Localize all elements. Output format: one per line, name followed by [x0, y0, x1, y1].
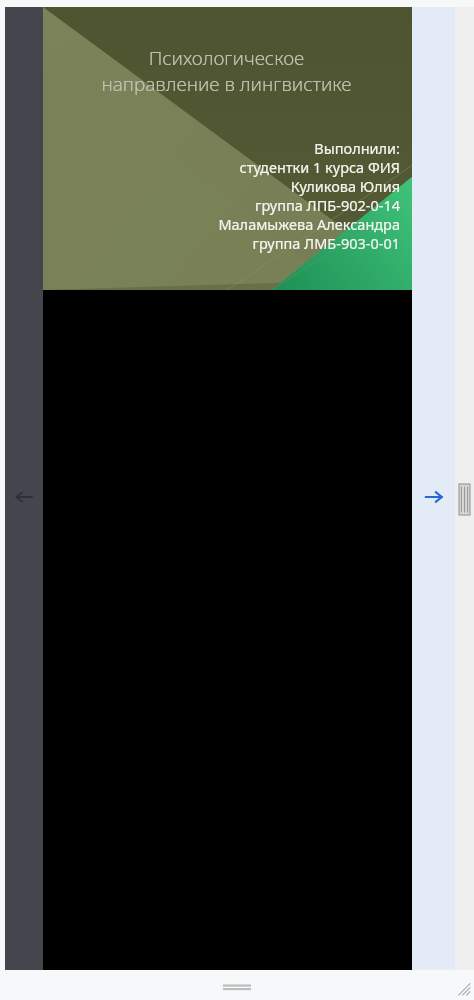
- staticText: Выполнили: студентки 1 курса ФИЯ Куликов…: [218, 138, 400, 253]
- button[interactable]: Scroll: [459, 484, 470, 515]
- button[interactable]: [43, 7, 412, 970]
- button[interactable]: Resize panel: [207, 977, 267, 997]
- staticText: Психологическое направление в лингвистик…: [61, 45, 392, 97]
- button[interactable]: Previous page: [5, 469, 43, 525]
- button[interactable]: Next page: [412, 469, 455, 525]
- button[interactable]: Resize window: [453, 978, 471, 996]
